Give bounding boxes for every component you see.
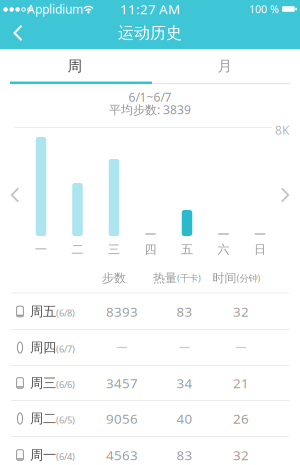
staticText: 周一 [30, 447, 56, 463]
staticText: 83 [176, 303, 192, 320]
staticText: 一 [35, 242, 47, 257]
staticText: 运动历史 [118, 23, 182, 43]
staticText: 4563 [106, 446, 138, 464]
staticText: 34 [176, 374, 192, 392]
staticText: 日 [254, 242, 266, 257]
staticText: 三 [108, 242, 120, 257]
staticText: 26 [233, 410, 249, 427]
staticText: (千卡) [177, 272, 201, 284]
staticText: 周四 [30, 339, 56, 356]
staticText: 平均步数: 3839 [109, 101, 191, 117]
staticText: 步数 [102, 271, 126, 285]
staticText: (6/7) [56, 343, 75, 355]
button[interactable]: 月 [150, 49, 300, 82]
button[interactable]: 周 [0, 49, 150, 82]
button[interactable]: 周五 [0, 294, 300, 329]
staticText: 周 [67, 57, 82, 75]
staticText: (6/8) [56, 307, 75, 319]
staticText: 40 [176, 410, 192, 427]
button[interactable]: 周一 [0, 437, 300, 465]
staticText: (6/4) [56, 450, 75, 463]
staticText: 8393 [106, 303, 138, 320]
staticText: 32 [233, 303, 249, 320]
button[interactable] [274, 180, 296, 210]
button[interactable]: 周三 [0, 365, 300, 400]
staticText: 周二 [30, 410, 56, 427]
staticText: 100 % [249, 2, 279, 16]
button[interactable]: 周二 [0, 401, 300, 436]
button[interactable] [4, 180, 26, 210]
staticText: 9056 [106, 410, 138, 427]
staticText: 32 [233, 446, 249, 464]
staticText: 83 [176, 446, 192, 464]
staticText: Applidium [27, 1, 83, 17]
staticText: 时间 [212, 271, 236, 285]
staticText: 月 [217, 57, 232, 75]
staticText: 11:27 AM [120, 0, 180, 18]
staticText: 6/1~6/7 [128, 89, 171, 105]
staticText: (分钟) [236, 272, 260, 284]
button[interactable]: 周四 [0, 330, 300, 365]
staticText: 五 [181, 242, 193, 257]
staticText: 3457 [106, 374, 138, 392]
staticText: (6/5) [56, 414, 75, 426]
staticText: 六 [217, 242, 229, 257]
staticText: 8K [275, 122, 289, 138]
staticText: 热量 [153, 271, 177, 285]
staticText: 二 [71, 242, 83, 257]
button[interactable] [1, 17, 35, 48]
staticText: 周三 [30, 375, 56, 391]
staticText: (6/6) [56, 378, 75, 391]
staticText: 周五 [30, 303, 56, 320]
staticText: 四 [144, 242, 156, 257]
staticText: 21 [233, 374, 249, 392]
